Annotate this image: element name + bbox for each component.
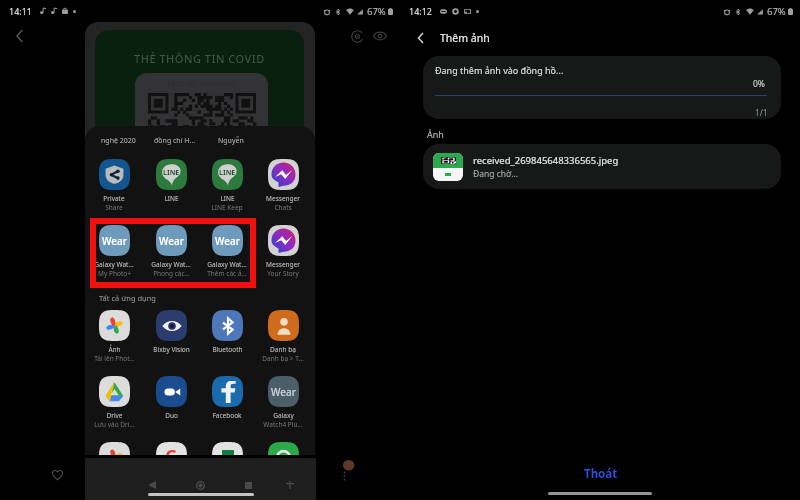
- button[interactable]: Wear: [143, 225, 199, 278]
- staticText: nghệ 2020: [101, 136, 136, 146]
- staticText: Tải lên Phot...: [94, 354, 135, 363]
- staticText: Private: [103, 194, 125, 203]
- staticText: 0%: [753, 78, 765, 90]
- button[interactable]: Favorite: [47, 464, 67, 484]
- button[interactable]: Thoát: [572, 463, 630, 485]
- staticText: 14:12: [409, 5, 433, 17]
- button[interactable]: Ảnh: [86, 310, 142, 363]
- staticText: Drive: [106, 411, 123, 420]
- staticText: Lưu vào Dri...: [94, 420, 135, 429]
- button[interactable]: Messenger: [255, 225, 311, 278]
- button[interactable]: Wear: [86, 225, 142, 278]
- button[interactable]: Back: [142, 475, 162, 495]
- staticText: Bixby Vision: [153, 345, 190, 354]
- staticText: Watch4 Plu...: [263, 420, 303, 429]
- staticText: LINE: [164, 194, 179, 203]
- other: Back: [410, 27, 432, 49]
- button[interactable]: Add: [280, 475, 300, 495]
- staticText: Danh bạ: [270, 345, 296, 354]
- button[interactable]: Bluetooth: [199, 310, 255, 354]
- staticText: 1/1: [755, 107, 768, 119]
- button[interactable]: Messenger: [255, 159, 311, 212]
- staticText: Wear: [159, 234, 184, 248]
- button[interactable]: Danh bạ: [255, 310, 311, 363]
- staticText: Đang chờ...: [473, 168, 519, 180]
- button[interactable]: [255, 442, 311, 455]
- staticText: Phong các...: [153, 269, 190, 278]
- button[interactable]: Refresh: [346, 25, 368, 47]
- button[interactable]: Drive: [86, 376, 142, 429]
- staticText: Chats: [274, 203, 292, 212]
- staticText: LINE Keep: [211, 203, 243, 212]
- staticText: Duo: [165, 411, 178, 420]
- staticText: received_269845648336565.jpeg: [473, 154, 619, 167]
- button[interactable]: Facebook: [199, 376, 255, 420]
- staticText: Facebook: [212, 411, 242, 420]
- button[interactable]: Private: [86, 159, 142, 212]
- staticText: Galaxy Wat...: [94, 260, 134, 269]
- button[interactable]: Bixby Vision: [143, 310, 199, 354]
- button[interactable]: [86, 442, 142, 455]
- staticText: Galaxy Wat...: [151, 260, 191, 269]
- staticText: My Photo+: [98, 269, 131, 278]
- button[interactable]: Preview: [369, 25, 391, 47]
- staticText: Nguyễn: [218, 136, 244, 146]
- button[interactable]: G: [143, 442, 199, 455]
- button[interactable]: Back: [410, 25, 490, 51]
- button[interactable]: [199, 442, 255, 455]
- button[interactable]: LINE: [199, 159, 255, 212]
- staticText: LINE: [163, 168, 180, 178]
- staticText: Wear: [102, 234, 127, 248]
- button[interactable]: Duo: [143, 376, 199, 420]
- staticText: Tất cả ứng dụng: [99, 293, 156, 303]
- staticText: Wear: [215, 234, 240, 248]
- staticText: THẺ THÔNG TIN COVID: [134, 51, 265, 66]
- staticText: đồng chí H...: [154, 136, 196, 146]
- staticText: LINE: [220, 194, 235, 203]
- staticText: G: [165, 445, 178, 455]
- staticText: Bluetooth: [212, 345, 243, 354]
- button[interactable]: LINE: [143, 159, 199, 203]
- staticText: Galaxy Wat...: [207, 260, 247, 269]
- button[interactable]: Back: [8, 24, 31, 47]
- staticText: Wear: [271, 385, 296, 399]
- staticText: Đang thêm ảnh vào đồng hồ...: [435, 64, 564, 76]
- staticText: Thoát: [584, 466, 618, 482]
- button[interactable]: Home: [190, 475, 210, 495]
- staticText: Messenger: [266, 260, 300, 269]
- button[interactable]: Recents: [238, 475, 258, 495]
- staticText: Your Story: [267, 269, 299, 278]
- staticText: 67%: [367, 5, 386, 18]
- staticText: Thêm ảnh: [440, 31, 490, 45]
- staticText: Ảnh: [427, 128, 444, 140]
- staticText: 67%: [767, 5, 786, 18]
- staticText: 14:11: [9, 5, 33, 17]
- staticText: LINE: [219, 168, 236, 178]
- staticText: Galaxy: [273, 411, 294, 420]
- button[interactable]: Wear: [255, 376, 311, 429]
- staticText: Messenger: [266, 194, 300, 203]
- button[interactable]: Wear: [199, 225, 255, 278]
- staticText: Ảnh: [108, 345, 121, 354]
- button[interactable]: received_269845648336565.jpeg: [423, 144, 781, 189]
- staticText: Share: [105, 203, 123, 212]
- staticText: Thêm các ả...: [207, 269, 247, 278]
- staticText: Danh bạ > T...: [262, 354, 304, 363]
